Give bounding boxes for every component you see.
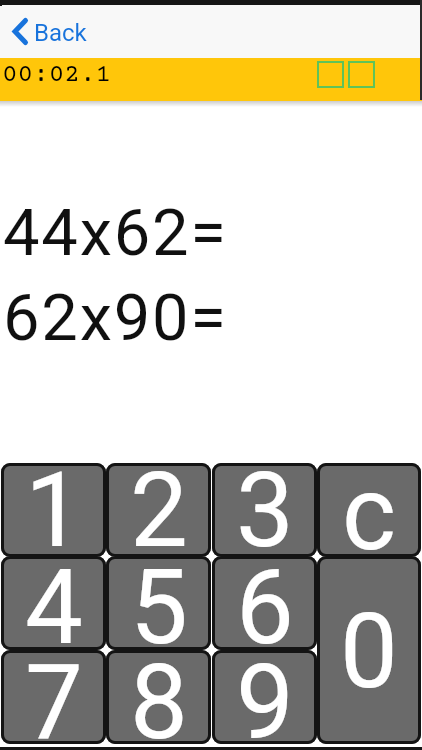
button[interactable]: 9 [212,650,317,744]
staticText: 4 [25,547,83,668]
staticText: 00:02.1 [2,61,112,90]
button[interactable]: Back [6,12,90,50]
staticText: 2 [130,450,188,571]
staticText: c [342,453,396,574]
staticText: 3 [236,450,294,571]
staticText: 5 [130,547,188,668]
button[interactable]: 3 [212,463,317,557]
button[interactable]: 6 [212,556,317,650]
staticText: 8 [130,642,188,750]
button[interactable]: 0 [317,556,421,744]
staticText: Back [34,19,87,47]
staticText: 7 [25,642,83,750]
staticText: 44x62= [3,195,228,271]
button[interactable]: 2 [106,463,211,557]
button[interactable]: 5 [106,556,211,650]
button[interactable]: c [317,463,421,557]
staticText: 9 [236,642,294,750]
staticText: 62x90= [3,280,228,356]
staticText: 1 [25,450,83,571]
staticText: 6 [236,547,294,668]
button[interactable]: 1 [1,463,106,557]
staticText: 0 [340,591,398,712]
button[interactable]: 8 [106,650,211,744]
button[interactable]: 7 [1,650,106,744]
button[interactable]: 4 [1,556,106,650]
